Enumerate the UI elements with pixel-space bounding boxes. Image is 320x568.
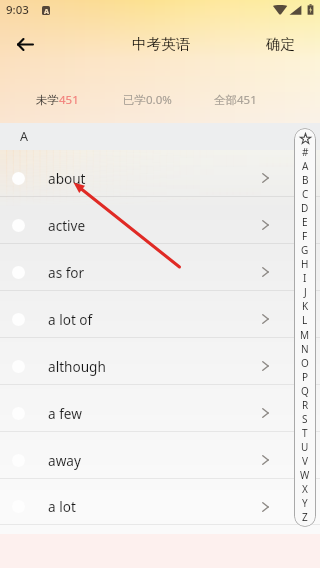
button[interactable]: 全部451 bbox=[214, 77, 257, 123]
button[interactable]: 确定 bbox=[266, 35, 295, 53]
staticText: S bbox=[302, 412, 308, 426]
staticText: I bbox=[303, 271, 307, 285]
button[interactable]: about bbox=[0, 150, 320, 197]
button[interactable]: active bbox=[0, 197, 320, 244]
staticText: E bbox=[302, 215, 308, 229]
staticText: Z bbox=[302, 510, 308, 524]
staticText: as for bbox=[48, 263, 85, 282]
staticText: A bbox=[20, 128, 28, 145]
staticText: H bbox=[301, 257, 309, 271]
staticText: P bbox=[302, 370, 309, 384]
button[interactable]: 已学0.0% bbox=[123, 77, 172, 123]
staticText: V bbox=[302, 454, 308, 468]
button[interactable]: as for bbox=[0, 244, 320, 291]
button[interactable]: away bbox=[0, 432, 320, 479]
staticText: O bbox=[301, 356, 309, 370]
staticText: a lot of bbox=[48, 310, 93, 329]
button[interactable]: 未学451 bbox=[36, 77, 79, 123]
staticText: D bbox=[301, 201, 309, 215]
staticText: Q bbox=[301, 384, 309, 398]
staticText: # bbox=[302, 145, 309, 159]
staticText: although bbox=[48, 357, 106, 376]
button[interactable]: a lot of bbox=[0, 291, 320, 338]
staticText: Y bbox=[302, 496, 308, 510]
staticText: U bbox=[301, 440, 309, 454]
staticText: about bbox=[48, 169, 86, 188]
staticText: K bbox=[302, 299, 309, 313]
button[interactable]: although bbox=[0, 338, 320, 385]
staticText: R bbox=[302, 398, 309, 412]
button[interactable]: Alphabet index bbox=[294, 128, 316, 527]
staticText: L bbox=[302, 313, 308, 327]
staticText: C bbox=[302, 187, 309, 201]
staticText: W bbox=[300, 468, 310, 482]
staticText: 全部451 bbox=[214, 92, 257, 108]
staticText: T bbox=[302, 426, 308, 440]
staticText: N bbox=[301, 342, 309, 356]
button[interactable]: a few bbox=[0, 385, 320, 432]
button[interactable]: Back bbox=[5, 24, 45, 64]
staticText: B bbox=[302, 173, 309, 187]
staticText: 已学0.0% bbox=[123, 92, 172, 108]
staticText: a few bbox=[48, 404, 82, 423]
staticText: 未学451 bbox=[36, 92, 79, 108]
staticText: M bbox=[300, 328, 310, 342]
staticText: J bbox=[304, 285, 307, 299]
staticText: X bbox=[302, 482, 308, 496]
staticText: 确定 bbox=[266, 35, 295, 53]
staticText: 9:03 bbox=[6, 2, 29, 18]
staticText: A bbox=[44, 6, 49, 15]
staticText: 中考英语 bbox=[132, 35, 191, 53]
button[interactable]: a lot bbox=[0, 479, 320, 525]
staticText: a lot bbox=[48, 497, 76, 516]
staticText: A bbox=[302, 159, 309, 173]
staticText: G bbox=[301, 243, 309, 257]
staticText: active bbox=[48, 216, 86, 235]
staticText: away bbox=[48, 451, 81, 470]
staticText: F bbox=[302, 229, 308, 243]
